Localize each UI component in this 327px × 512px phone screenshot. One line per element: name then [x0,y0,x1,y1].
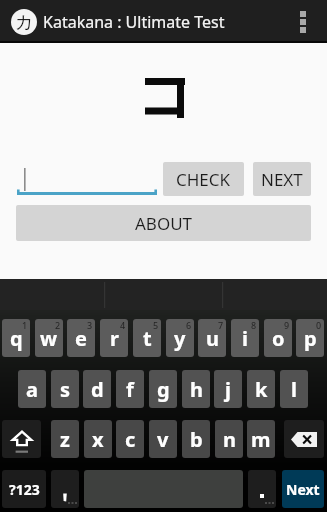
button[interactable]: y [166,319,194,357]
staticText: s [60,376,71,403]
button[interactable]: e [67,319,95,357]
staticText: カ [15,11,34,34]
staticText: 4 [120,319,126,331]
staticText: ?123 [9,480,40,499]
button[interactable]: f [116,370,144,408]
staticText: 1 [22,319,28,331]
staticText: x [92,426,104,453]
staticText: i [242,325,248,352]
staticText: j [225,376,231,403]
staticText: n [223,426,236,453]
staticText: y [174,325,186,352]
staticText: m [251,426,271,453]
staticText: e [75,325,87,352]
button[interactable]: NEXT [253,162,311,196]
staticText: f [126,376,134,403]
staticText: t [143,325,152,352]
staticText: ABOUT [135,212,193,235]
button[interactable]: i [231,319,259,357]
button[interactable]: Next [282,470,324,508]
button[interactable]: ABOUT [16,205,311,241]
button[interactable]: u [198,319,226,357]
button[interactable]: v [149,420,177,458]
staticText: 9 [284,319,290,331]
staticText: 2 [55,319,61,331]
button[interactable]: p [296,319,324,357]
button[interactable]: d [83,370,111,408]
button[interactable]: k [247,370,275,408]
staticText: 6 [186,319,192,331]
button[interactable]: Delete [284,420,324,458]
staticText: q [10,325,23,352]
button[interactable]: t [133,319,161,357]
button[interactable]: w [35,319,63,357]
staticText: b [190,426,203,453]
staticText: w [40,325,58,352]
staticText: p [304,325,317,352]
button[interactable]: h [182,370,210,408]
button[interactable]: q [2,319,30,357]
button[interactable]: a [18,370,46,408]
button[interactable]: m [247,420,275,458]
button[interactable]: More options [279,0,327,43]
staticText: Next [286,480,320,499]
staticText: a [26,376,38,403]
staticText: c [125,426,136,453]
button[interactable]: Period [248,470,276,508]
staticText: CHECK [176,168,231,191]
staticText: 7 [218,319,224,331]
staticText: 5 [153,319,159,331]
staticText: z [60,426,70,453]
staticText: NEXT [261,168,303,191]
staticText: d [91,376,104,403]
button[interactable]: o [264,319,292,357]
button[interactable] [17,160,157,196]
button[interactable]: x [84,420,112,458]
button[interactable]: Comma [51,470,79,508]
button[interactable]: s [51,370,79,408]
button[interactable]: z [51,420,79,458]
button[interactable]: n [215,420,243,458]
staticText: v [157,426,169,453]
staticText: l [291,376,297,403]
button[interactable]: CHECK [163,162,244,196]
staticText: h [190,376,203,403]
button[interactable]: l [280,370,308,408]
button[interactable]: Shift [2,420,41,458]
staticText: r [110,325,119,352]
button[interactable]: b [182,420,210,458]
staticText: Katakana : Ultimate Test [43,11,225,33]
staticText: u [206,325,219,352]
staticText: 8 [251,319,257,331]
button[interactable]: j [214,370,242,408]
button[interactable]: ?123 [2,470,46,508]
button[interactable]: c [116,420,144,458]
staticText: 0 [316,319,322,331]
staticText: k [255,376,268,403]
staticText: o [272,325,285,352]
button[interactable]: r [100,319,128,357]
staticText: 3 [87,319,93,331]
button[interactable]: g [149,370,177,408]
staticText: g [157,376,170,403]
